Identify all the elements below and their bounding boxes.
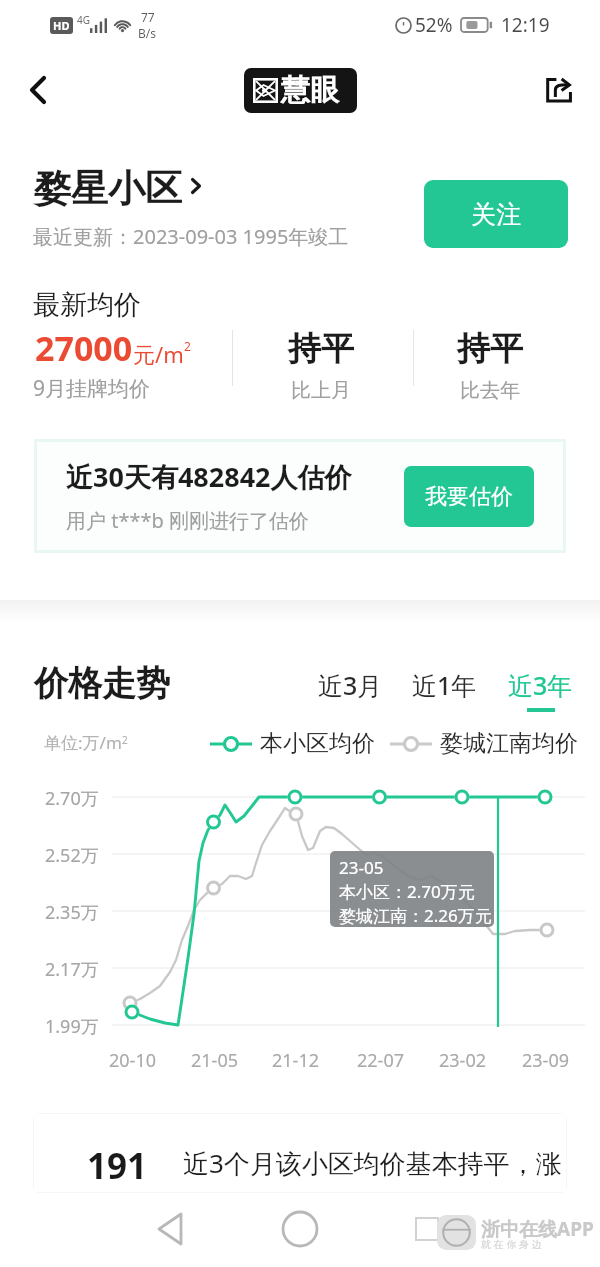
staticText: 77 (141, 9, 155, 25)
staticText: 婺城江南均价 (440, 729, 578, 758)
staticText: 本小区均价 (260, 729, 375, 758)
staticText: 2.35万 (45, 900, 99, 925)
staticText: 最近更新：2023-09-03 1995年竣工 (33, 223, 349, 250)
staticText: 21-12 (272, 1048, 319, 1073)
staticText: 近3年 (508, 668, 573, 702)
staticText: 近3个月该小区均价基本持平，涨 (183, 1145, 562, 1181)
staticText: 慧眼 (281, 72, 339, 109)
staticText: 近1年 (412, 668, 477, 702)
staticText: 2.17万 (45, 957, 99, 982)
staticText: 元/m (133, 339, 184, 369)
button[interactable]: 近1年 (406, 662, 483, 708)
button[interactable]: 我要估价 (404, 466, 534, 527)
staticText: 191 (87, 1142, 148, 1190)
staticText: 关注 (471, 199, 521, 230)
staticText: 最新均价 (33, 288, 141, 322)
staticText: 2.70万 (45, 786, 99, 811)
staticText: 比上月 (291, 378, 351, 403)
staticText: 2 (122, 733, 128, 747)
button[interactable]: 慧眼 (244, 68, 357, 113)
staticText: 1.99万 (45, 1014, 99, 1039)
staticText: 27000 (35, 325, 133, 371)
staticText: 近30天有482842人估价 (66, 458, 352, 495)
staticText: 20-10 (109, 1048, 156, 1073)
staticText: 2 (184, 338, 191, 354)
staticText: 本小区：2.70万元 (339, 880, 475, 903)
button[interactable]: 近3月 (312, 662, 389, 708)
staticText: 就 在 你 身 边 (481, 1237, 542, 1251)
staticText: 持平 (457, 328, 523, 370)
staticText: 婺星小区 (34, 165, 182, 212)
staticText: 2.52万 (45, 843, 99, 868)
button[interactable]: 近3年 (502, 662, 579, 718)
staticText: 23-05 (339, 856, 384, 879)
staticText: 9月挂牌均价 (33, 374, 151, 403)
button[interactable]: 关注 (424, 180, 568, 248)
button[interactable]: Back (12, 64, 64, 116)
staticText: 23-02 (439, 1048, 486, 1073)
staticText: 浙中在线APP (481, 1216, 594, 1242)
staticText: 我要估价 (425, 483, 513, 511)
staticText: 52% (415, 12, 453, 38)
staticText: 比去年 (460, 378, 520, 403)
staticText: 4G (77, 13, 90, 27)
staticText: 持平 (288, 328, 354, 370)
staticText: 22-07 (357, 1048, 404, 1073)
staticText: 23-09 (522, 1048, 569, 1073)
staticText: 21-05 (191, 1048, 238, 1073)
button[interactable]: Share (534, 65, 584, 115)
staticText: 近3月 (318, 668, 383, 702)
staticText: HD (53, 18, 70, 33)
staticText: 婺城江南：2.26万元 (339, 904, 492, 927)
staticText: 单位:万/m (44, 731, 122, 754)
staticText: 用户 t***b 刚刚进行了估价 (66, 507, 309, 534)
staticText: B/s (138, 25, 157, 41)
staticText: 价格走势 (34, 662, 170, 705)
staticText: 12:19 (501, 12, 550, 38)
